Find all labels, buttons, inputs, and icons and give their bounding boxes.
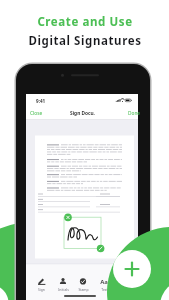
staticText: Close [30,110,43,117]
button[interactable]: Close [30,110,43,117]
staticText: Text [101,287,108,292]
button[interactable]: Stamp [72,287,94,292]
staticText: 9:41 [36,98,46,104]
staticText: Sign [38,287,45,292]
staticText: Aa [100,278,108,286]
button[interactable]: Text [93,287,115,292]
staticText: Initials [58,287,69,292]
staticText: Sign Docu. [70,110,95,117]
button[interactable]: Done [128,110,141,117]
button[interactable]: Sign [30,287,52,292]
button[interactable]: Initials [52,287,74,292]
staticText: Stamp [78,287,89,292]
staticText: Done [128,110,141,117]
staticText: Create and Use [37,14,133,30]
staticText: Digital Signatures [28,33,142,49]
button[interactable]: Add signature [113,250,151,288]
